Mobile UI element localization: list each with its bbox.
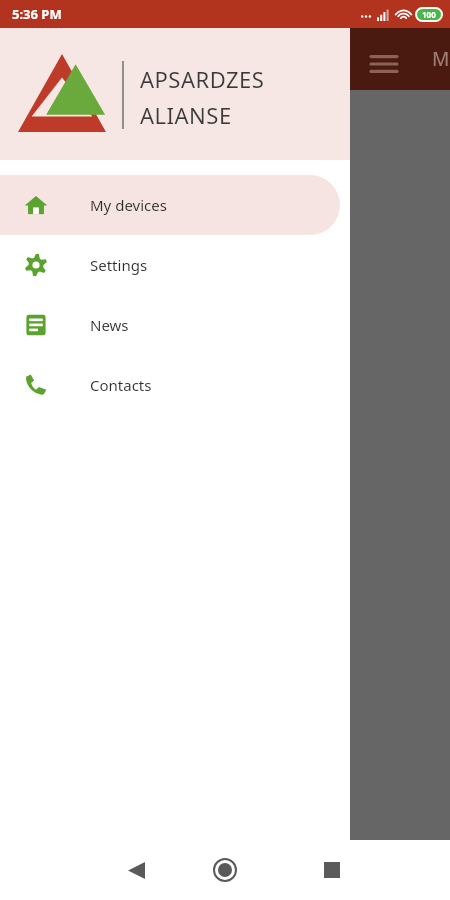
staticText: Contacts: [90, 375, 152, 395]
staticText: 100: [422, 9, 436, 20]
button[interactable]: Contacts: [0, 355, 340, 415]
staticText: My devices: [90, 195, 167, 215]
staticText: Settings: [90, 255, 148, 275]
button[interactable]: Back: [112, 846, 160, 894]
button[interactable]: Settings: [0, 235, 340, 295]
staticText: M: [432, 46, 450, 72]
button[interactable]: My devices: [0, 175, 340, 235]
staticText: ALIANSE: [140, 100, 232, 130]
button[interactable]: Home: [201, 846, 249, 894]
staticText: 5:36 PM: [12, 5, 62, 23]
staticText: APSARDZES: [140, 64, 265, 94]
button[interactable]: Open navigation menu: [362, 42, 406, 86]
staticText: News: [90, 315, 129, 335]
button[interactable]: Recent apps: [308, 846, 356, 894]
button[interactable]: News: [0, 295, 340, 355]
